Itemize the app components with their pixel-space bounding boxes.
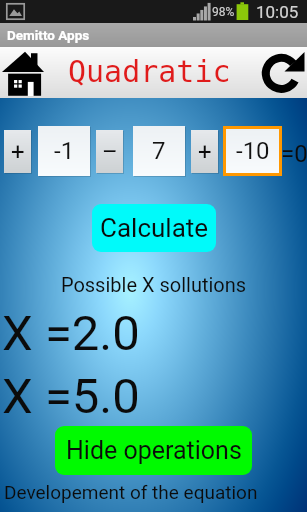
staticText: – (102, 138, 118, 166)
staticText: X =2.0 (2, 305, 140, 362)
staticText: Developement of the equation (4, 481, 258, 503)
staticText: Demitto Apps (7, 27, 90, 43)
staticText: 7 (152, 137, 166, 165)
staticText: + (11, 138, 25, 166)
staticText: Hide operations (66, 436, 242, 465)
button[interactable]: + (191, 130, 218, 173)
staticText: + (198, 138, 212, 166)
button[interactable]: – (96, 130, 123, 173)
button[interactable]: 7 (133, 126, 185, 176)
button[interactable]: -1 (38, 126, 90, 176)
button[interactable]: Hide operations (55, 426, 252, 475)
staticText: Calculate (100, 213, 209, 243)
staticText: 10:05 (256, 2, 299, 22)
button[interactable]: -10 (226, 129, 279, 173)
staticText: Possible X sollutions (0, 273, 307, 296)
staticText: X =5.0 (2, 368, 140, 425)
staticText: -10 (236, 137, 270, 165)
button[interactable]: + (4, 130, 31, 173)
staticText: Quadratic (68, 54, 231, 89)
button[interactable]: Calculate (92, 204, 216, 252)
staticText: =0 (281, 140, 307, 168)
button[interactable]: Home (2, 49, 45, 96)
staticText: -1 (54, 137, 75, 165)
button[interactable]: Refresh (258, 50, 307, 98)
staticText: 98% (212, 5, 235, 19)
